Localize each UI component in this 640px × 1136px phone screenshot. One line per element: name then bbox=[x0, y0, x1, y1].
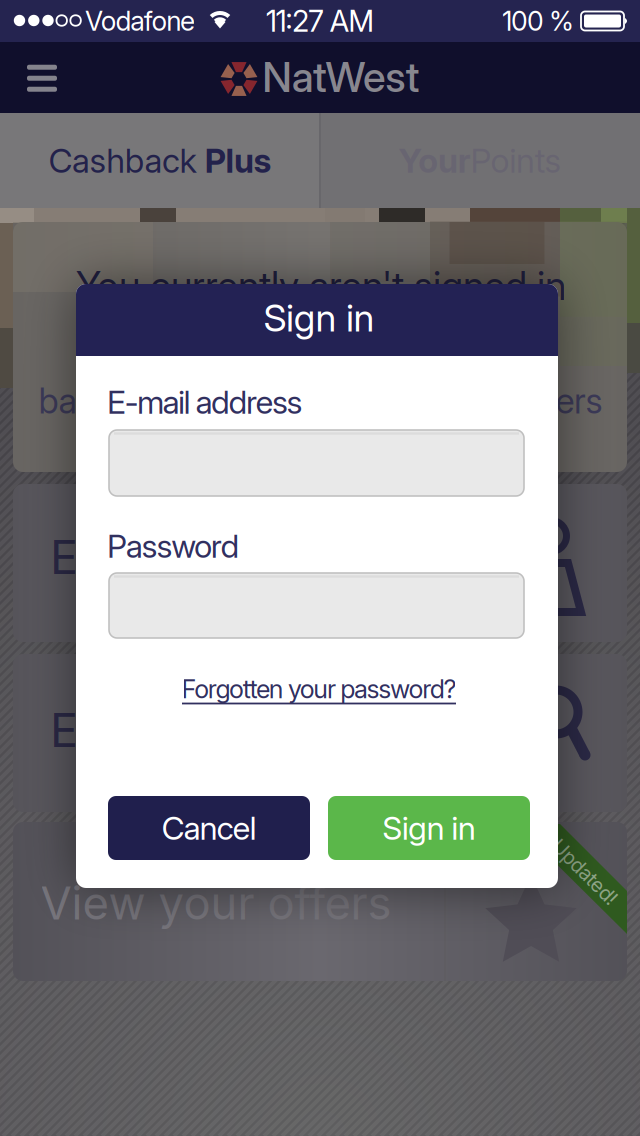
staticText: NatWest bbox=[262, 53, 420, 101]
button[interactable]: Cashback Plus bbox=[0, 113, 320, 208]
staticText: E bbox=[50, 529, 78, 585]
button[interactable] bbox=[27, 64, 57, 92]
staticText: 100 % bbox=[502, 5, 574, 37]
staticText: Vodafone bbox=[85, 5, 195, 37]
staticText: Updated! bbox=[543, 860, 627, 884]
staticText: You currently aren't signed in bbox=[76, 263, 566, 309]
button[interactable] bbox=[109, 573, 524, 638]
staticText: 11:27 AM bbox=[266, 4, 374, 38]
staticText: View your offers bbox=[40, 876, 391, 930]
button[interactable]: Cancel bbox=[108, 796, 310, 860]
button[interactable]: Sign in bbox=[328, 796, 530, 860]
staticText: Sign in bbox=[263, 296, 375, 340]
staticText: YourPoints bbox=[398, 141, 562, 180]
staticText: Forgotten your password? bbox=[181, 674, 456, 704]
staticText: Cancel bbox=[161, 809, 256, 847]
staticText: Sign in bbox=[382, 809, 476, 847]
staticText: Cashback Plus bbox=[48, 141, 272, 180]
button[interactable] bbox=[109, 430, 524, 496]
staticText: E bbox=[50, 702, 78, 758]
button[interactable]: Forgotten your password? bbox=[179, 676, 459, 706]
staticText: E-mail address bbox=[107, 383, 302, 421]
staticText: ba bbox=[38, 381, 76, 421]
staticText: ers bbox=[555, 381, 602, 421]
staticText: Password bbox=[107, 527, 240, 565]
